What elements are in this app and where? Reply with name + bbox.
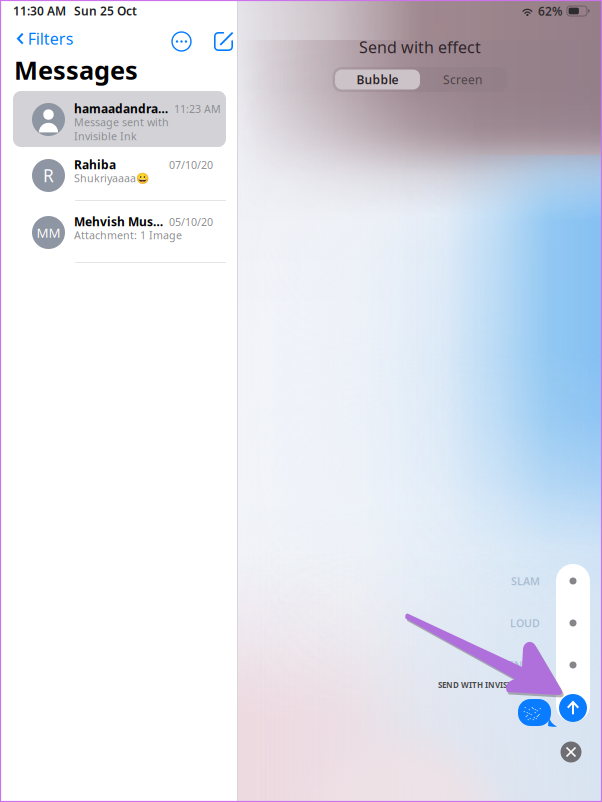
button[interactable]: Screen	[420, 69, 505, 89]
staticText: 11:30 AM	[13, 3, 66, 19]
button[interactable]: Bubble	[335, 69, 420, 89]
staticText: Bubble	[356, 71, 398, 87]
staticText: 07/10/20	[169, 158, 213, 172]
staticText: Shukriyaaaa😀	[74, 171, 149, 185]
button[interactable]: GENTLE	[376, 655, 540, 675]
button[interactable]: Filters	[9, 21, 82, 56]
staticText: 05/10/20	[169, 215, 213, 229]
staticText: Rahiba	[74, 156, 116, 172]
button[interactable]: Close	[556, 737, 586, 767]
staticText: Screen	[443, 71, 482, 87]
button[interactable]: New message	[207, 25, 240, 58]
staticText: SLAM	[511, 574, 540, 588]
staticText: GENTLE	[500, 658, 540, 672]
staticText: Sun 25 Oct	[74, 3, 137, 19]
button[interactable]: R	[13, 149, 226, 195]
button[interactable]: SLAM	[376, 571, 540, 591]
staticText: Filters	[28, 28, 74, 49]
staticText: MM	[36, 224, 60, 241]
button[interactable]: hamaadandra…	[13, 91, 226, 147]
staticText: hamaadandra…	[74, 100, 168, 116]
staticText: R	[43, 164, 54, 187]
staticText: Send with effect	[359, 36, 481, 58]
staticText: 62%	[538, 3, 563, 19]
staticText: Message sent with	[74, 115, 169, 129]
staticText: Invisible Ink	[74, 129, 137, 143]
staticText: Messages	[14, 53, 138, 87]
button[interactable]: MM	[13, 206, 226, 252]
button[interactable]: LOUD	[376, 613, 540, 633]
button[interactable]: Send with Invisible Ink	[556, 691, 590, 725]
staticText: SEND WITH INVISIBLE INK	[438, 680, 540, 690]
staticText: 11:23 AM	[174, 102, 221, 116]
staticText: Mehvish Mus…	[74, 213, 163, 229]
button[interactable]: SEND WITH INVISIBLE INK	[376, 675, 540, 695]
staticText: LOUD	[510, 616, 540, 630]
button[interactable]: Filters menu	[165, 25, 198, 58]
staticText: Attachment: 1 Image	[74, 228, 182, 242]
